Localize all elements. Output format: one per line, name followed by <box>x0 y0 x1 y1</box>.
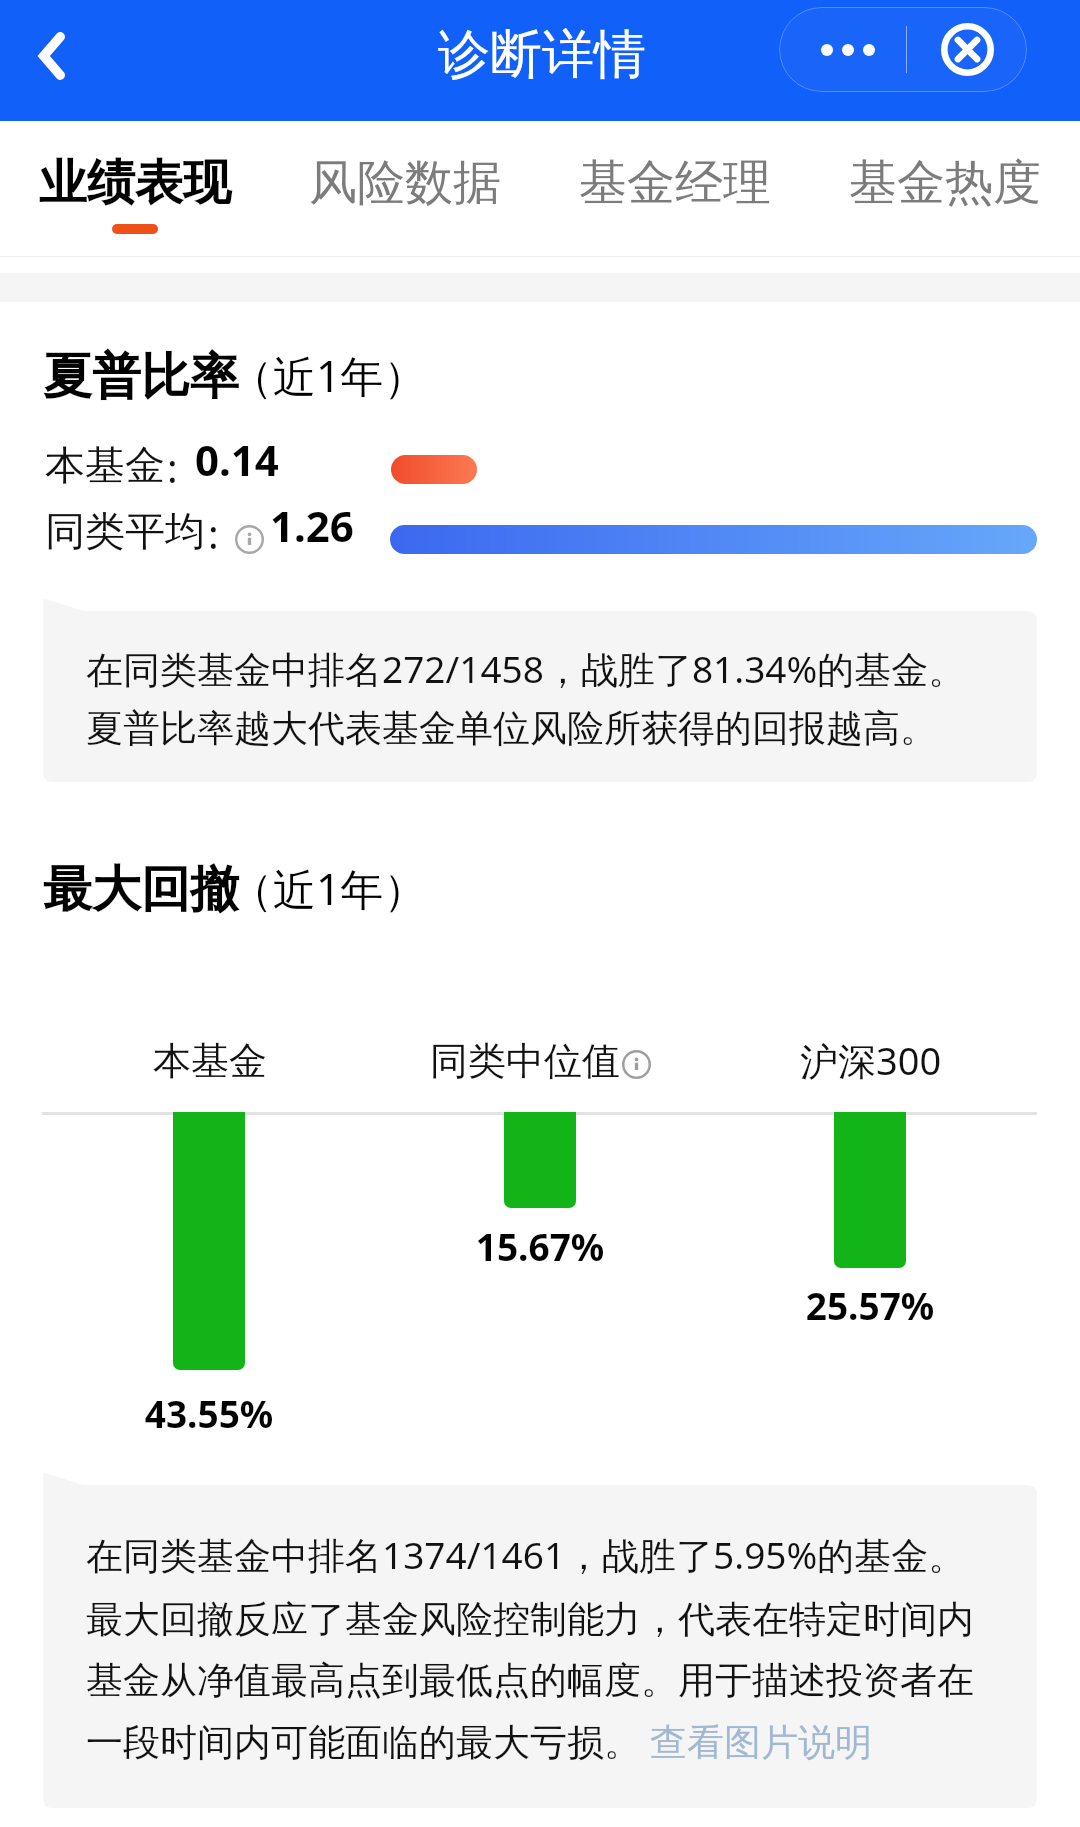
button[interactable]: 基金经理 <box>540 121 810 256</box>
staticText: 业绩表现 <box>39 153 231 213</box>
staticText: 夏普比率 <box>43 346 239 408</box>
staticText: 风险数据 <box>309 153 501 213</box>
staticText: : <box>208 506 219 560</box>
staticText: 最大回撤反应了基金风险控制能力，代表在特定时间内 <box>86 1596 974 1643</box>
button[interactable]: 查看图片说明 <box>650 1719 872 1766</box>
staticText: 同类中位值 <box>430 1037 620 1085</box>
staticText: : <box>167 440 178 494</box>
staticText: 1.26 <box>270 497 354 554</box>
staticText: 本基金 <box>45 440 165 490</box>
staticText: 43.55% <box>59 1388 359 1438</box>
staticText: 基金热度 <box>849 153 1041 213</box>
staticText: 基金经理 <box>579 153 771 213</box>
button[interactable]: About peer median <box>622 1050 651 1079</box>
button[interactable]: Back <box>10 13 96 99</box>
staticText: 一段时间内可能面临的最大亏损。 <box>86 1719 641 1766</box>
button[interactable]: 业绩表现 <box>0 121 270 256</box>
staticText: 诊断详情 <box>438 22 646 88</box>
staticText: 同类平均 <box>45 506 205 556</box>
button[interactable]: 基金热度 <box>810 121 1080 256</box>
button[interactable]: Close <box>907 7 1027 92</box>
staticText: 在同类基金中排名1374/1461，战胜了5.95%的基金。 <box>86 1529 966 1580</box>
staticText: 在同类基金中排名272/1458，战胜了81.34%的基金。 <box>86 643 966 694</box>
button[interactable]: About peer average <box>235 525 264 554</box>
staticText: 25.57% <box>720 1280 1020 1330</box>
staticText: 最大回撤 <box>43 859 239 921</box>
staticText: 沪深300 <box>800 1034 942 1086</box>
button[interactable]: More options <box>779 7 915 92</box>
staticText: 夏普比率越大代表基金单位风险所获得的回报越高。 <box>86 705 937 752</box>
staticText: （近1年） <box>230 346 427 405</box>
staticText: 本基金 <box>153 1037 267 1085</box>
staticText: 基金从净值最高点到最低点的幅度。用于描述投资者在 <box>86 1657 974 1704</box>
staticText: 15.67% <box>390 1221 690 1271</box>
button[interactable]: 风险数据 <box>270 121 540 256</box>
staticText: 0.14 <box>195 431 279 488</box>
staticText: （近1年） <box>230 859 427 918</box>
